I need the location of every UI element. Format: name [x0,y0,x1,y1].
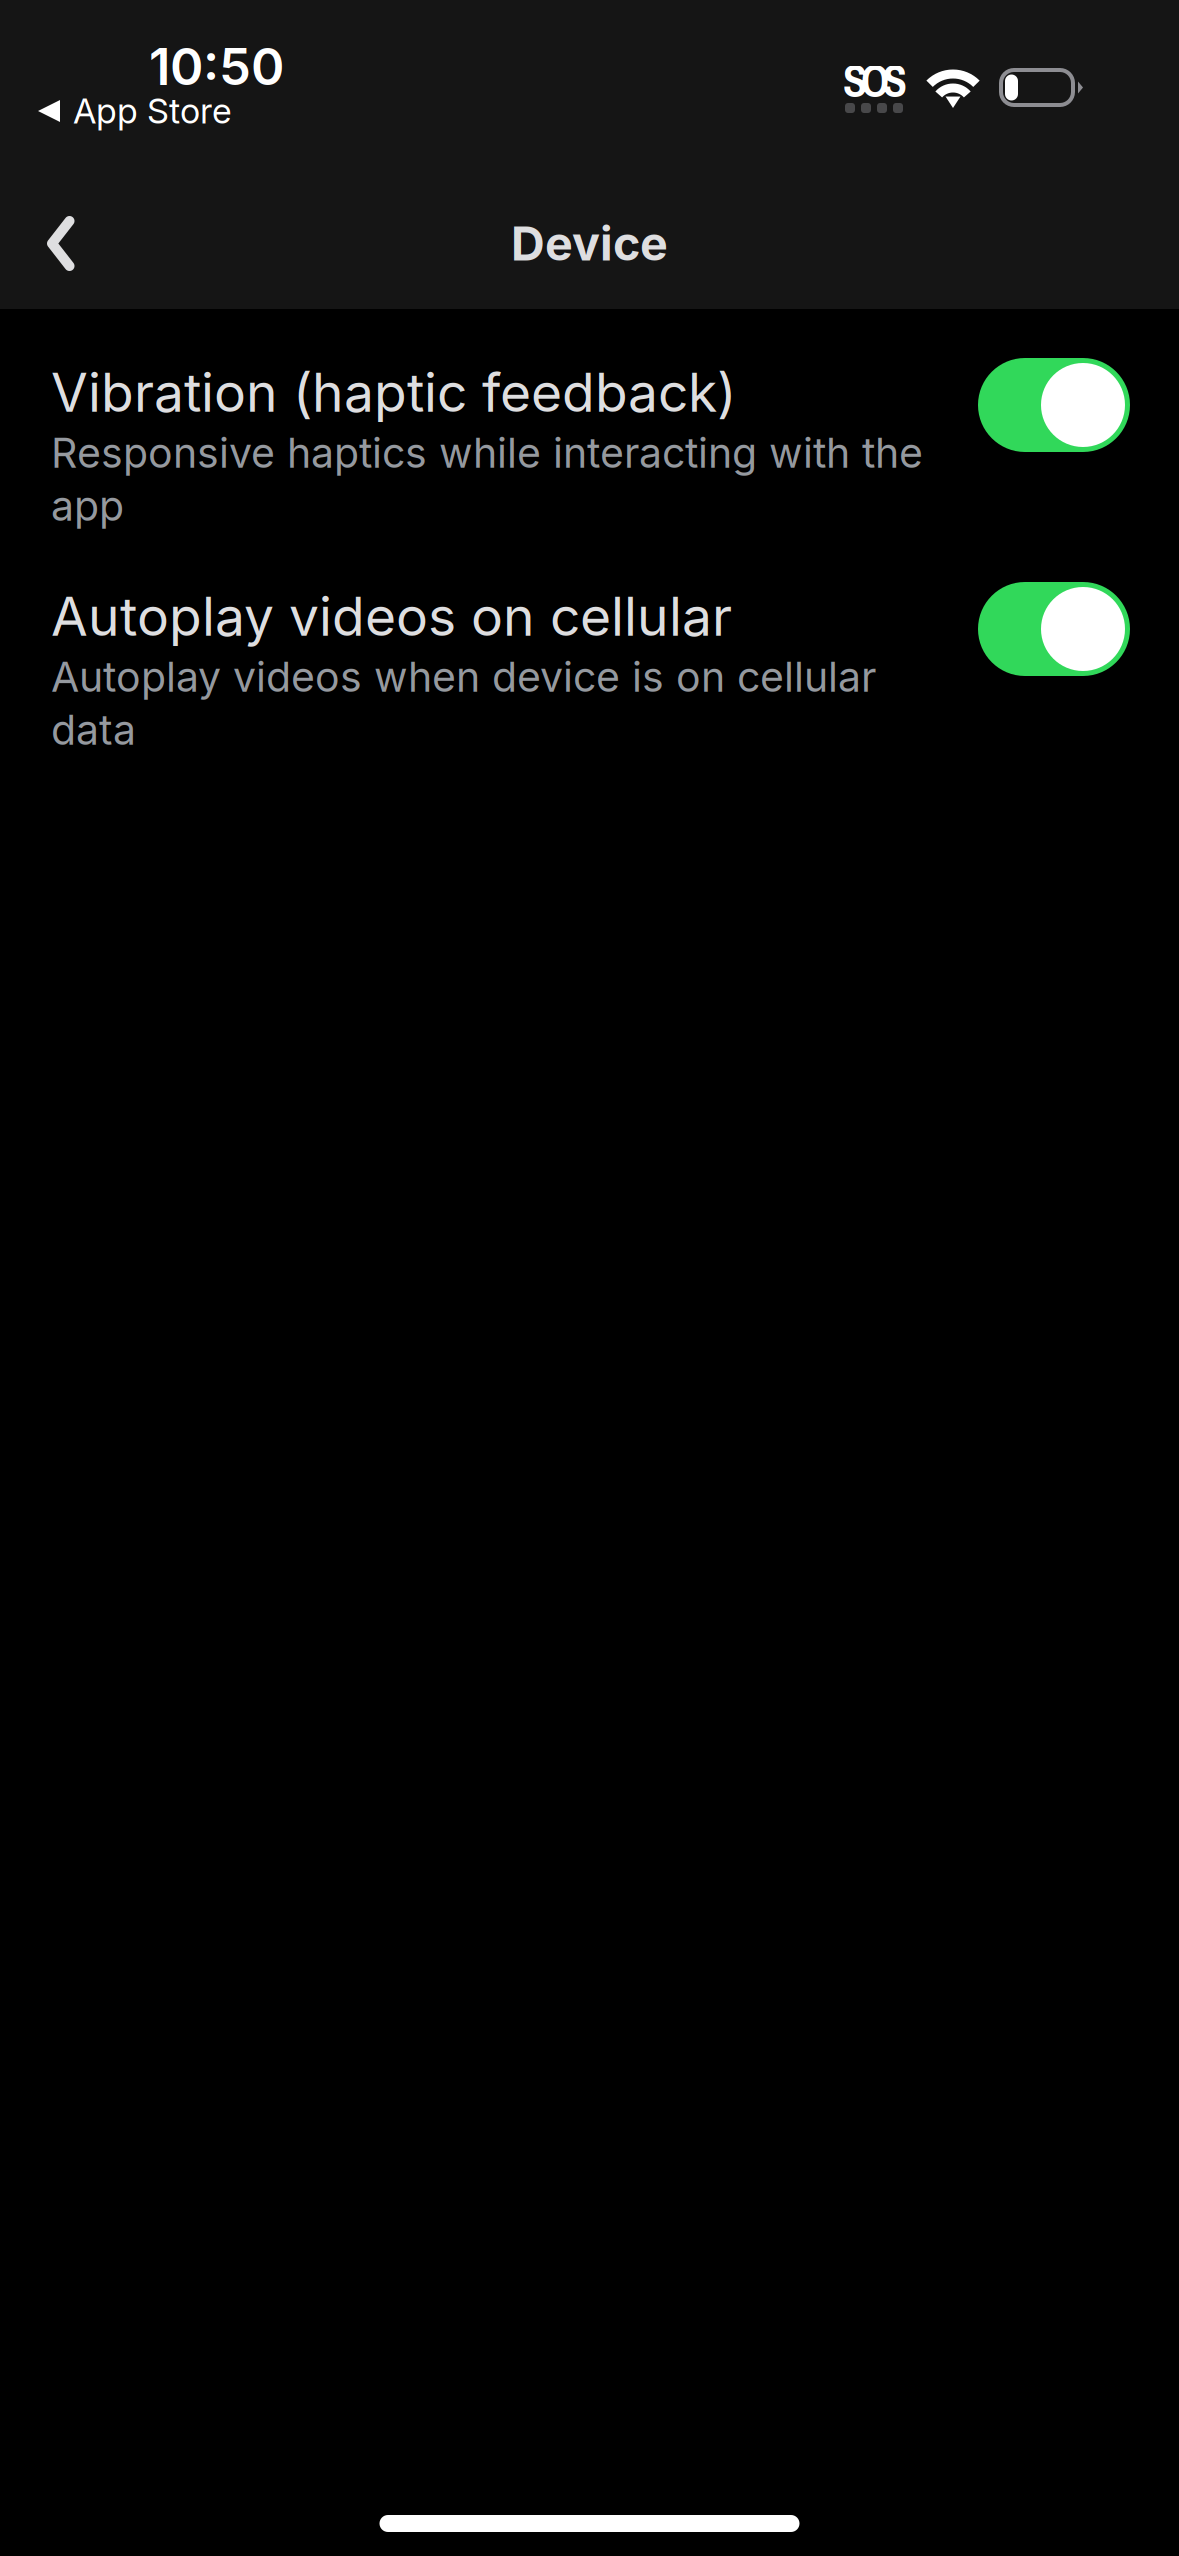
staticText: app [51,481,124,531]
staticText: 10:50 [149,36,284,97]
button[interactable]: Vibration (haptic feedback) [0,360,1179,520]
staticText: Responsive haptics while interacting wit… [51,428,923,478]
staticText: SOS [843,51,907,110]
staticText: Autoplay videos on cellular [51,584,732,648]
staticText: data [51,705,136,755]
button[interactable]: App Store [38,94,243,128]
staticText: Autoplay videos when device is on cellul… [51,652,876,702]
staticText: Device [511,215,668,272]
button[interactable]: Back [11,193,111,293]
staticText: Vibration (haptic feedback) [51,360,736,424]
button[interactable]: Autoplay videos on cellular [0,584,1179,744]
staticText: App Store [73,90,232,132]
